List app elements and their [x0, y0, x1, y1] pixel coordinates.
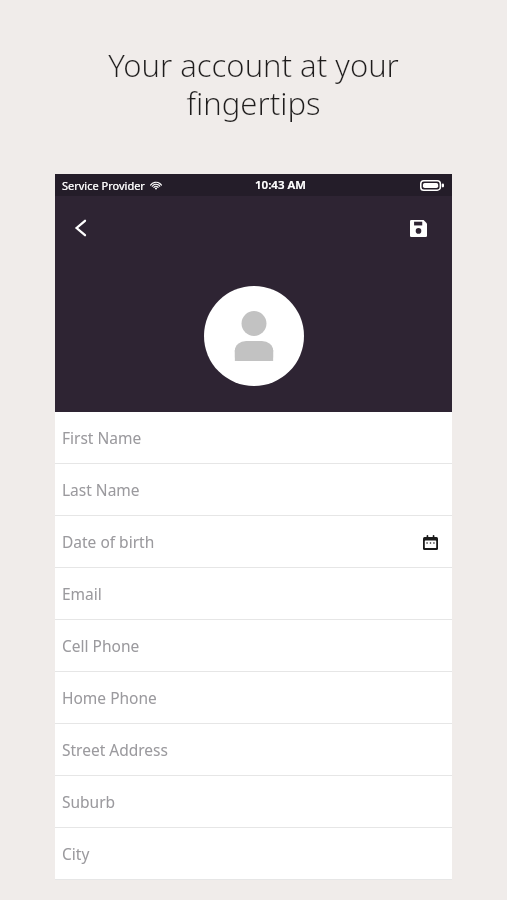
- button[interactable]: Date of birth: [55, 516, 452, 567]
- button[interactable]: Cell Phone: [55, 620, 452, 671]
- button[interactable]: Street Address: [55, 724, 452, 775]
- staticText: Cell Phone: [62, 635, 140, 656]
- staticText: Email: [62, 583, 102, 604]
- button[interactable]: Email: [55, 568, 452, 619]
- staticText: Suburb: [62, 791, 116, 812]
- staticText: 10:43 AM: [255, 177, 306, 193]
- button[interactable]: Suburb: [55, 776, 452, 827]
- staticText: Date of birth: [62, 531, 155, 552]
- staticText: Service Provider: [62, 178, 145, 193]
- button[interactable]: Save: [392, 202, 444, 254]
- staticText: Your account at your fingertips: [46, 44, 461, 124]
- staticText: Home Phone: [62, 687, 157, 708]
- staticText: Last Name: [62, 479, 140, 500]
- button[interactable]: Home Phone: [55, 672, 452, 723]
- button[interactable]: Back: [55, 202, 107, 254]
- button[interactable]: City: [55, 828, 452, 879]
- staticText: City: [62, 843, 90, 864]
- button[interactable]: First Name: [55, 412, 452, 463]
- staticText: Street Address: [62, 739, 168, 760]
- button[interactable]: Last Name: [55, 464, 452, 515]
- staticText: First Name: [62, 427, 142, 448]
